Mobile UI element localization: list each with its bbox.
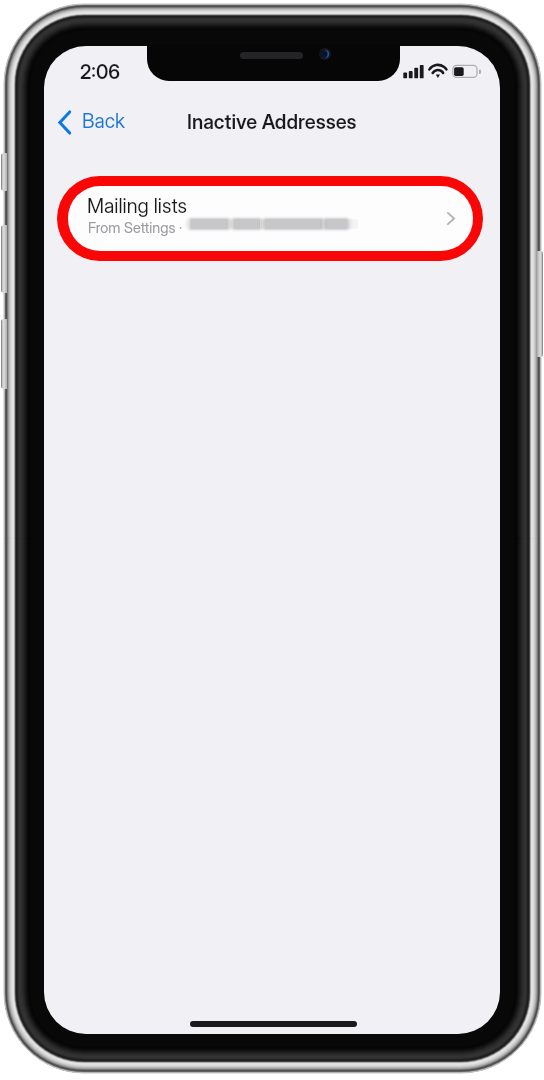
staticText: 2:06: [80, 60, 121, 83]
staticText: From Settings ·: [88, 219, 183, 237]
button[interactable]: Back: [52, 105, 136, 139]
staticText: Back: [82, 109, 126, 133]
button[interactable]: Mailing lists: [68, 186, 473, 251]
staticText: Mailing lists: [87, 194, 188, 218]
staticText: Inactive Addresses: [187, 110, 357, 134]
